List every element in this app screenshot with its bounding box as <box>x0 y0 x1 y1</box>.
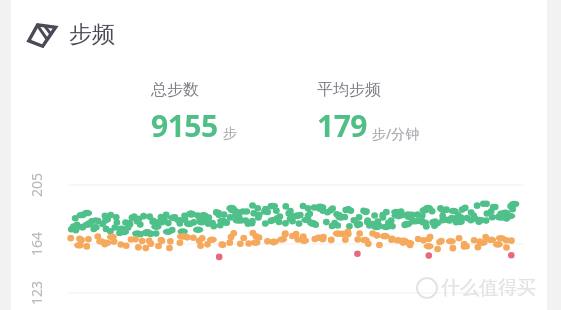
staticText: 什么值得买 <box>441 276 536 300</box>
staticText: 123 <box>27 280 46 305</box>
staticText: 步 <box>223 125 237 143</box>
staticText: 9155 <box>151 105 218 146</box>
staticText: 164 <box>27 231 46 256</box>
staticText: 步频 <box>69 20 115 49</box>
button[interactable]: 总步数 <box>151 80 237 146</box>
button[interactable]: 步频 <box>24 17 115 51</box>
staticText: 总步数 <box>151 80 199 100</box>
staticText: 179 <box>317 105 367 146</box>
staticText: 平均步频 <box>317 80 381 100</box>
other: 步频 <box>24 17 58 51</box>
staticText: 205 <box>27 172 46 197</box>
staticText: 步/分钟 <box>372 124 420 143</box>
button[interactable]: 平均步频 <box>317 80 420 146</box>
